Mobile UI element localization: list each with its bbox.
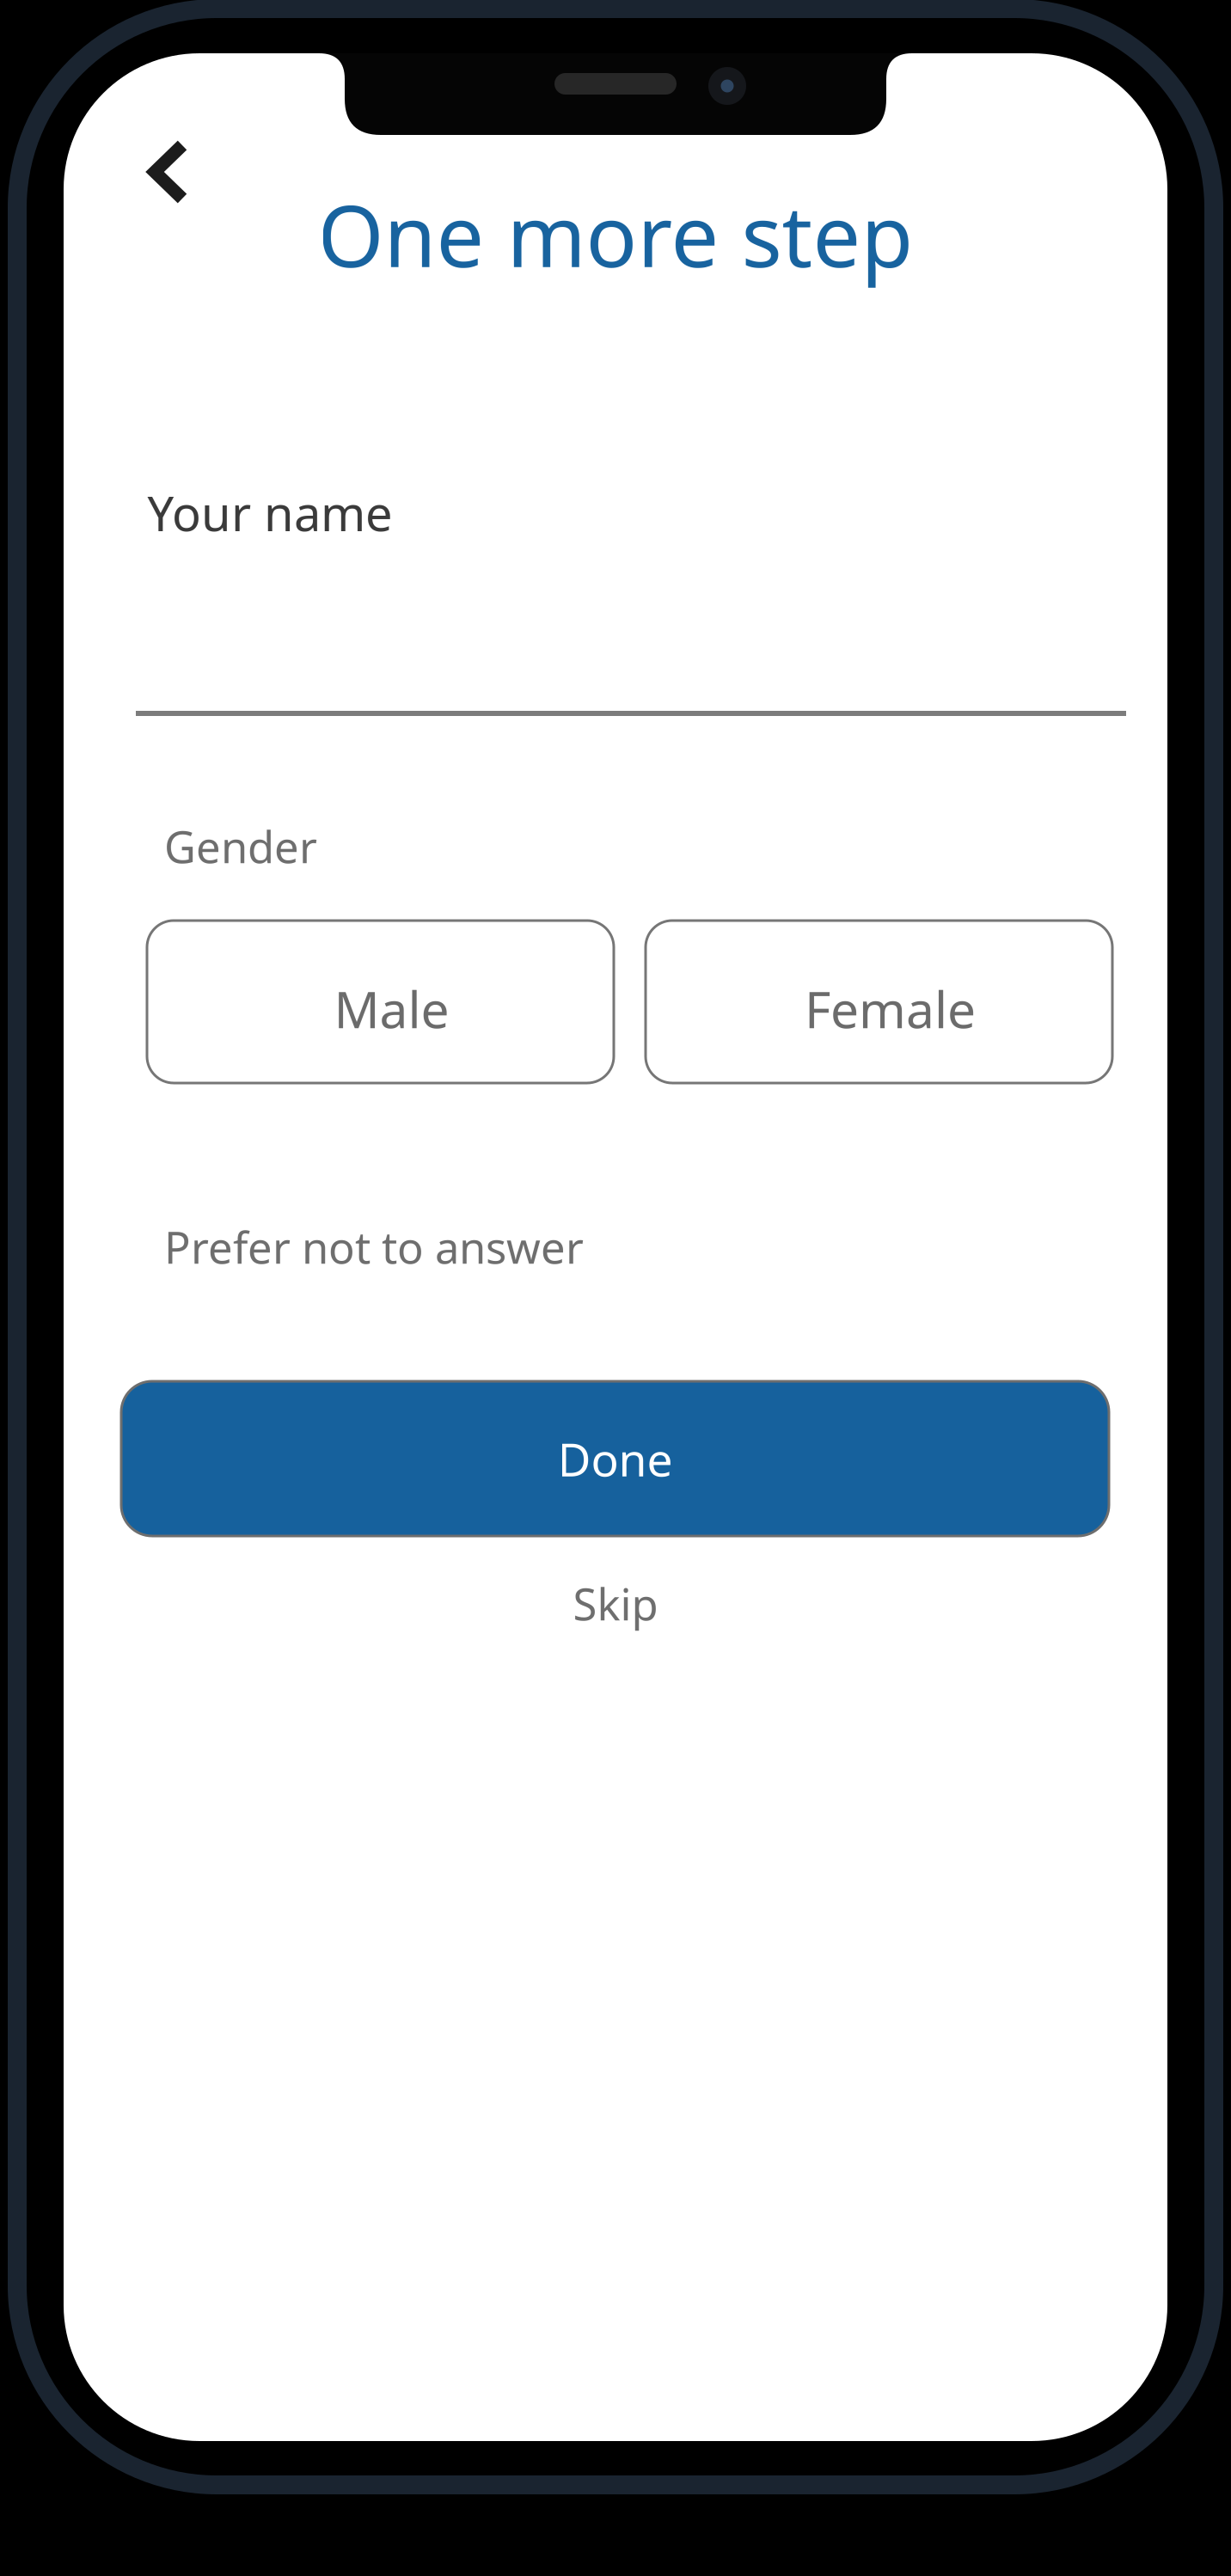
button[interactable]: Done [121,1381,1109,1536]
staticText: Prefer not to answer [164,1218,584,1276]
button[interactable]: Male [147,921,614,1083]
staticText: One more step [318,178,913,291]
staticText: Skip [573,1575,658,1632]
staticText: Female [805,975,976,1042]
button[interactable]: Female [646,921,1112,1083]
staticText: Gender [164,817,317,875]
button[interactable]: Skip [521,1575,710,1667]
button[interactable]: Prefer not to answer [164,1218,584,1300]
button[interactable]: Back [64,53,189,205]
staticText: Male [334,975,449,1042]
button[interactable]: Your name [136,431,1126,716]
staticText: Your name [147,480,393,544]
staticText: Done [557,1428,673,1489]
